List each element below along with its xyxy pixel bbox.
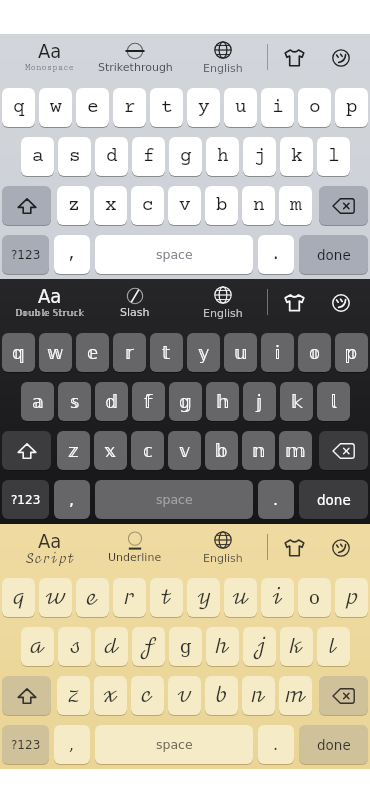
button[interactable] [332, 539, 350, 557]
button[interactable]: English [180, 41, 265, 75]
button[interactable]: s [58, 137, 91, 176]
button[interactable]: 𝕡 [335, 333, 368, 372]
button[interactable]: 𝕩 [94, 431, 127, 470]
button[interactable] [2, 431, 51, 470]
button[interactable]: 𝕢 [2, 333, 35, 372]
button[interactable] [319, 186, 368, 225]
button[interactable]: 𝕚 [261, 333, 294, 372]
button[interactable]: 𝓌 [39, 578, 72, 617]
button[interactable]: ?123 [2, 235, 49, 274]
button[interactable]: 𝕖 [76, 333, 109, 372]
button[interactable]: 𝒻 [132, 627, 165, 666]
button[interactable]: . [258, 725, 294, 764]
button[interactable]: 𝒹 [95, 627, 128, 666]
button[interactable]: , [54, 725, 90, 764]
button[interactable]: , [54, 235, 90, 274]
button[interactable]: t [150, 88, 183, 127]
button[interactable]: v [168, 186, 201, 225]
button[interactable] [284, 539, 305, 557]
button[interactable]: 𝓆 [2, 578, 35, 617]
button[interactable]: 𝓋 [168, 676, 201, 715]
button[interactable]: 𝒸 [131, 676, 164, 715]
button[interactable]: space [95, 235, 253, 274]
button[interactable]: 𝕗 [132, 382, 165, 421]
button[interactable] [2, 186, 51, 225]
button[interactable]: q [2, 88, 35, 127]
button[interactable]: 𝓁 [317, 627, 350, 666]
button[interactable]: , [54, 480, 90, 519]
button[interactable]: b [205, 186, 238, 225]
button[interactable]: 𝕣 [113, 333, 146, 372]
button[interactable]: 𝓉 [150, 578, 183, 617]
button[interactable]: w [39, 88, 72, 127]
button[interactable]: 𝓈 [58, 627, 91, 666]
button[interactable]: 𝕪 [187, 333, 220, 372]
button[interactable]: done [299, 480, 368, 519]
button[interactable]: 𝒷 [205, 676, 238, 715]
button[interactable]: 𝒶 [21, 627, 54, 666]
button[interactable]: g [169, 137, 202, 176]
button[interactable]: 𝕛 [243, 382, 276, 421]
button[interactable]: 𝕧 [168, 431, 201, 470]
button[interactable]: 𝕦 [224, 333, 257, 372]
button[interactable]: . [258, 235, 294, 274]
button[interactable] [284, 49, 305, 67]
button[interactable]: 𝓇 [113, 578, 146, 617]
button[interactable]: h [206, 137, 239, 176]
button[interactable]: 𝓂 [279, 676, 312, 715]
button[interactable]: 𝓀 [280, 627, 313, 666]
button[interactable]: a [21, 137, 54, 176]
button[interactable]: English [180, 286, 265, 320]
button[interactable]: ℯ [76, 578, 109, 617]
button[interactable] [284, 294, 305, 312]
button[interactable]: k [280, 137, 313, 176]
button[interactable]: . [258, 480, 294, 519]
button[interactable]: l [317, 137, 350, 176]
button[interactable]: done [299, 235, 368, 274]
button[interactable]: d [95, 137, 128, 176]
button[interactable]: space [95, 480, 253, 519]
button[interactable] [332, 49, 350, 67]
button[interactable] [332, 294, 350, 312]
button[interactable]: Underline [93, 531, 177, 564]
button[interactable]: Aa [8, 39, 92, 73]
button[interactable]: n [242, 186, 275, 225]
button[interactable]: f [132, 137, 165, 176]
button[interactable]: m [279, 186, 312, 225]
button[interactable]: 𝓃 [242, 676, 275, 715]
button[interactable]: 𝒾 [261, 578, 294, 617]
button[interactable]: 𝕒 [21, 382, 54, 421]
button[interactable]: 𝓅 [335, 578, 368, 617]
button[interactable]: p [335, 88, 368, 127]
button[interactable]: space [95, 725, 253, 764]
button[interactable]: Strikethrough [93, 41, 177, 74]
button[interactable] [319, 431, 368, 470]
button[interactable] [2, 676, 51, 715]
button[interactable]: 𝕨 [39, 333, 72, 372]
button[interactable]: 𝕕 [95, 382, 128, 421]
button[interactable]: English [180, 531, 265, 565]
button[interactable]: 𝕓 [205, 431, 238, 470]
button[interactable]: z [57, 186, 90, 225]
button[interactable]: 𝒿 [243, 627, 276, 666]
button[interactable]: done [299, 725, 368, 764]
button[interactable]: j [243, 137, 276, 176]
button[interactable]: 𝓊 [224, 578, 257, 617]
button[interactable]: 𝕤 [58, 382, 91, 421]
button[interactable] [319, 676, 368, 715]
button[interactable]: ?123 [2, 480, 49, 519]
button[interactable]: 𝕝 [317, 382, 350, 421]
button[interactable]: r [113, 88, 146, 127]
button[interactable]: c [131, 186, 164, 225]
button[interactable]: 𝒽 [206, 627, 239, 666]
button[interactable]: 𝓍 [94, 676, 127, 715]
button[interactable]: x [94, 186, 127, 225]
button[interactable]: 𝕠 [298, 333, 331, 372]
button[interactable]: 𝕘 [169, 382, 202, 421]
button[interactable]: Aa [8, 529, 92, 565]
button[interactable]: 𝕔 [131, 431, 164, 470]
button[interactable]: Slash [93, 286, 177, 319]
button[interactable]: g [169, 627, 202, 666]
button[interactable]: o [298, 88, 331, 127]
button[interactable]: i [261, 88, 294, 127]
